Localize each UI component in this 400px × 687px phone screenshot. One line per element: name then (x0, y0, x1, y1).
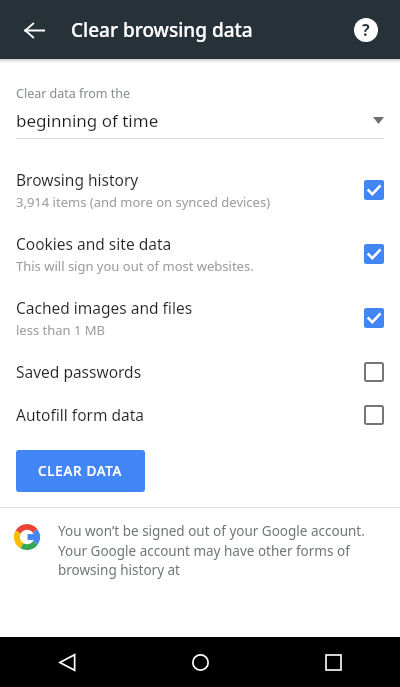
button[interactable]: Cached images and files (0, 286, 400, 350)
staticText: Cached images and files (16, 297, 193, 318)
staticText: less than 1 MB (16, 321, 106, 339)
staticText: This will sign you out of most websites. (16, 257, 254, 275)
button[interactable]: Recents (305, 637, 361, 687)
button[interactable]: Back (14, 10, 54, 50)
staticText: Cookies and site data (16, 233, 172, 254)
button[interactable]: Cookies and site data (0, 222, 400, 286)
staticText: Clear data from the (16, 85, 131, 102)
button[interactable]: Back (39, 637, 95, 687)
button[interactable]: You won’t be signed out of your Google a… (0, 522, 400, 579)
staticText: Browsing history (16, 169, 139, 190)
button[interactable]: CLEAR DATA (16, 450, 145, 492)
staticText: ? (362, 19, 370, 41)
staticText: Clear browsing data (71, 17, 346, 43)
button[interactable]: Help (346, 10, 386, 50)
button[interactable]: Browsing history (0, 158, 400, 222)
staticText: beginning of time (16, 109, 373, 132)
button[interactable]: Autofill form data (0, 393, 400, 436)
button[interactable]: Saved passwords (0, 350, 400, 393)
staticText: You won’t be signed out of your Google a… (58, 522, 384, 579)
staticText: Autofill form data (16, 404, 144, 425)
staticText: Saved passwords (16, 361, 142, 382)
button[interactable]: Clear data from the (0, 85, 400, 139)
button[interactable]: Home (172, 637, 228, 687)
staticText: CLEAR DATA (38, 462, 123, 480)
staticText: 3,914 items (and more on synced devices) (16, 193, 271, 211)
